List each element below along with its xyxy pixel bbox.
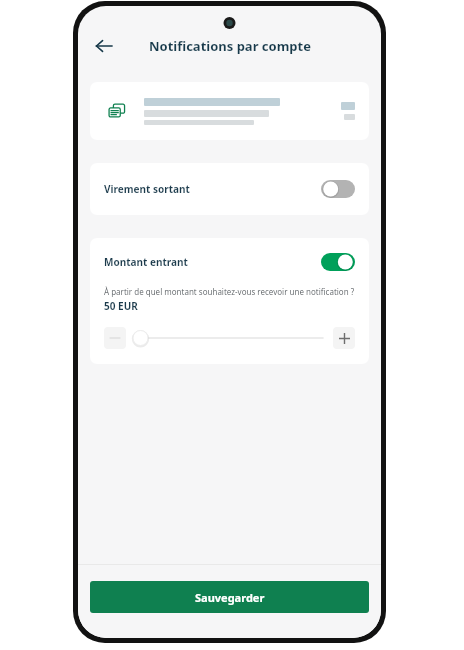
button[interactable]: Increase amount <box>333 327 355 349</box>
staticText: Notifications par compte <box>149 37 311 55</box>
button[interactable] <box>90 82 369 140</box>
staticText: Montant entrant <box>104 255 321 269</box>
button[interactable]: Decrease amount <box>104 327 126 349</box>
button[interactable] <box>132 327 327 349</box>
staticText: Sauvegarder <box>195 590 265 605</box>
button[interactable]: Virement sortant <box>90 163 369 215</box>
button[interactable]: Sauvegarder <box>90 581 369 613</box>
staticText: 50 EUR <box>104 299 138 313</box>
button[interactable]: Montant entrant <box>90 238 369 286</box>
button[interactable]: Toggle on <box>321 253 355 271</box>
button[interactable]: Toggle off <box>321 180 355 198</box>
staticText: À partir de quel montant souhaitez-vous … <box>104 286 355 297</box>
button[interactable]: Back <box>88 30 120 62</box>
staticText: Virement sortant <box>104 182 321 196</box>
